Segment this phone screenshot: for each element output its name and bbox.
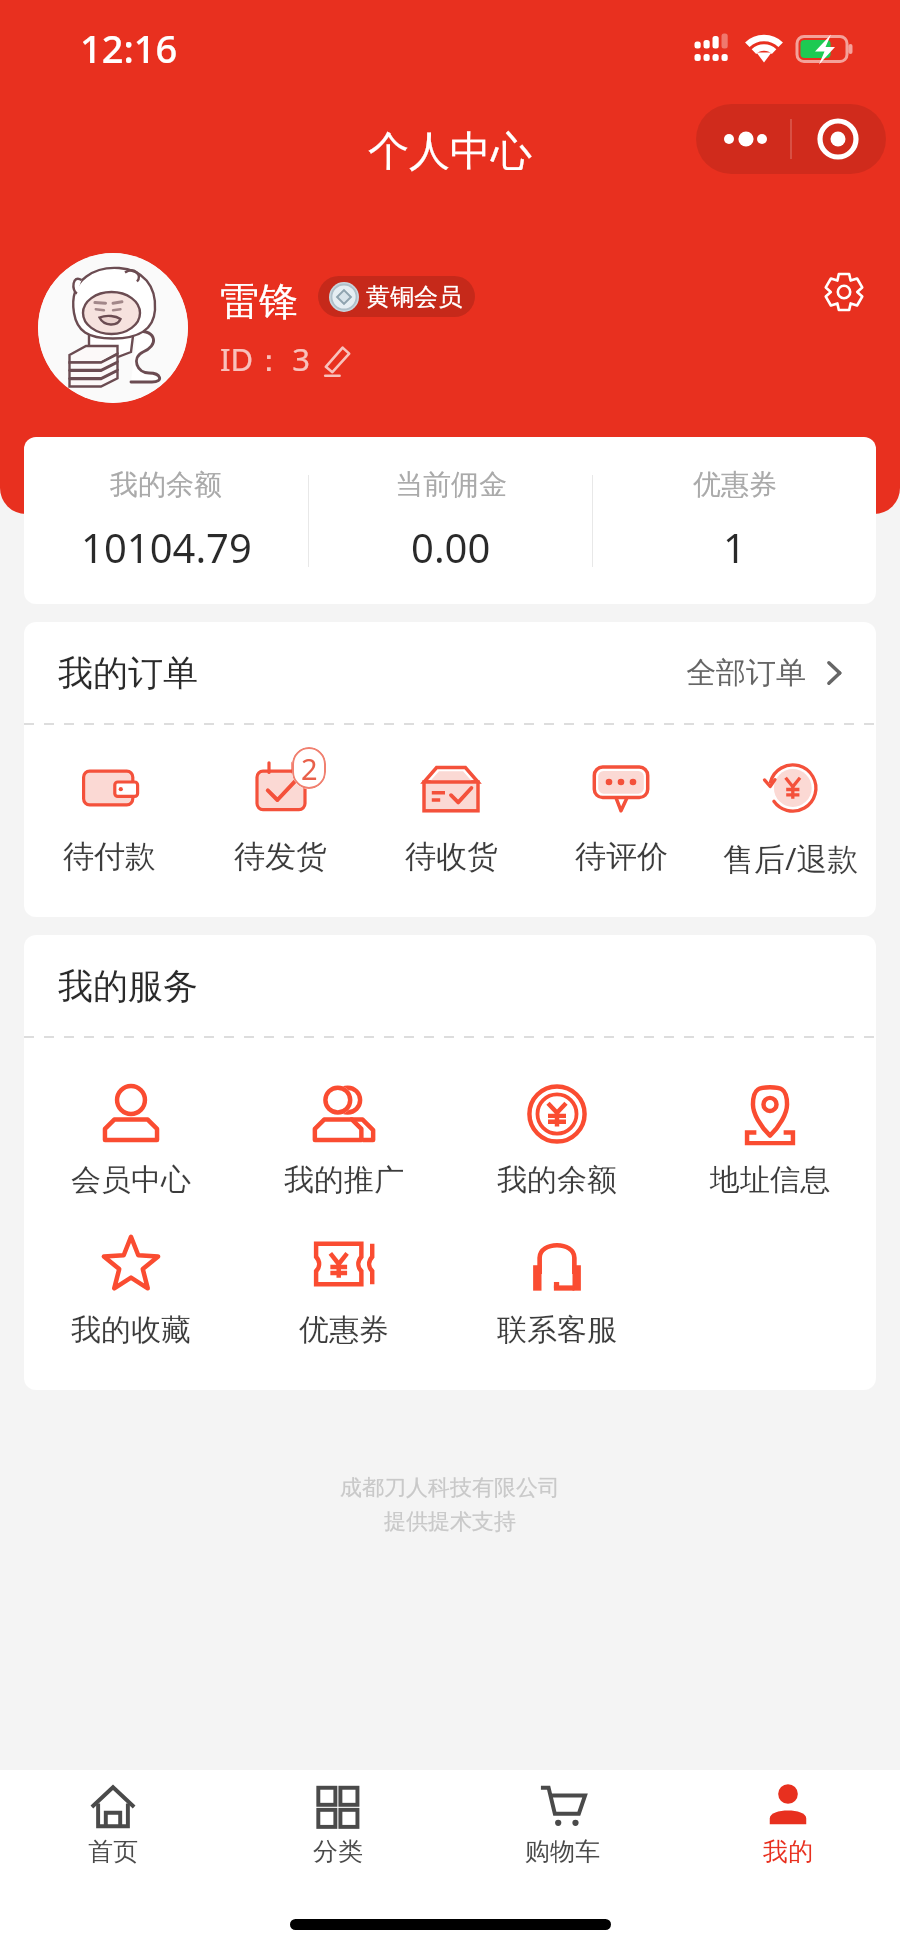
staticText: 0.00 [411,520,491,574]
button[interactable]: More menu and close [696,104,886,174]
button[interactable]: 待收货 [366,757,536,876]
button[interactable]: 购物车 [450,1778,675,1867]
staticText: 2 [301,749,318,788]
button[interactable]: 优惠券 [237,1233,450,1349]
staticText: ID： 3 [220,338,310,380]
staticText: 地址信息 [710,1161,830,1199]
staticText: 待评价 [575,837,668,876]
button[interactable]: 分类 [225,1778,450,1867]
staticText: 我的服务 [58,964,198,1008]
staticText: 全部订单 [686,654,806,692]
staticText: 优惠券 [693,467,777,502]
staticText: 我的 [763,1836,813,1867]
staticText: 我的推广 [284,1161,404,1199]
staticText: 当前佣金 [395,467,507,502]
button[interactable]: 首页 [0,1778,225,1867]
staticText: 优惠券 [299,1311,389,1349]
button[interactable]: 地址信息 [663,1083,876,1199]
button[interactable]: 优惠券 [593,437,876,574]
staticText: 分类 [313,1836,363,1867]
staticText: 待付款 [63,837,156,876]
staticText: 我的订单 [58,651,198,695]
staticText: 待发货 [234,837,327,876]
staticText: 我的余额 [110,467,222,502]
staticText: 我的余额 [497,1161,617,1199]
button[interactable]: 我的余额 [24,437,308,574]
staticText: 我的收藏 [71,1311,191,1349]
staticText: 联系客服 [497,1311,617,1349]
button[interactable]: 黄铜会员 [318,276,475,317]
staticText: 购物车 [525,1836,600,1867]
button[interactable]: Avatar [38,253,188,403]
button[interactable]: Edit ID [324,344,354,374]
button[interactable]: 全部订单 [686,654,850,692]
button[interactable]: 我的余额 [450,1083,663,1199]
button[interactable]: 我的推广 [237,1083,450,1199]
button[interactable]: 待付款 [24,757,195,876]
staticText: 黄铜会员 [366,282,462,312]
staticText: 1 [723,520,746,574]
staticText: 12:16 [80,22,178,74]
button[interactable]: 联系客服 [450,1233,663,1349]
staticText: 提供提术支持 [384,1508,516,1536]
staticText: 成都刀人科技有限公司 [340,1474,560,1502]
button[interactable]: 会员中心 [24,1083,237,1199]
staticText: 雷锋 [220,277,298,326]
staticText: 个人中心 [368,126,532,178]
button[interactable]: 售后/退款 [706,757,876,879]
button[interactable]: 2 [195,757,366,876]
staticText: 10104.79 [81,520,252,574]
button[interactable]: 我的收藏 [24,1233,237,1349]
staticText: 售后/退款 [723,837,859,879]
staticText: 会员中心 [71,1161,191,1199]
button[interactable]: 我的 [675,1778,900,1867]
staticText: 待收货 [405,837,498,876]
button[interactable]: 当前佣金 [309,437,592,574]
button[interactable]: Settings [816,264,872,320]
staticText: 首页 [88,1836,138,1867]
button[interactable]: 待评价 [536,757,706,876]
